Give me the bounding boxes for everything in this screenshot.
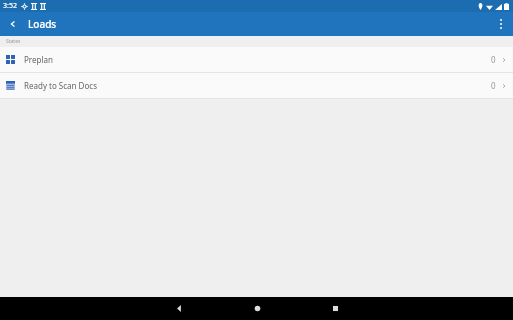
staticText: 3:52	[3, 1, 17, 11]
staticText: States	[6, 38, 21, 45]
staticText: 0	[491, 54, 496, 65]
button[interactable]: Home	[237, 297, 277, 320]
button[interactable]: More options	[489, 12, 513, 36]
staticText: Ready to Scan Docs	[24, 80, 97, 91]
button[interactable]: Ready to Scan Docs	[0, 73, 513, 98]
staticText: Preplan	[24, 54, 53, 65]
button[interactable]: Recent apps	[315, 297, 355, 320]
button[interactable]: Preplan	[0, 47, 513, 72]
button[interactable]: Back	[0, 12, 26, 36]
staticText: 0	[491, 80, 496, 91]
button[interactable]: Back	[159, 297, 199, 320]
staticText: Loads	[28, 17, 57, 31]
